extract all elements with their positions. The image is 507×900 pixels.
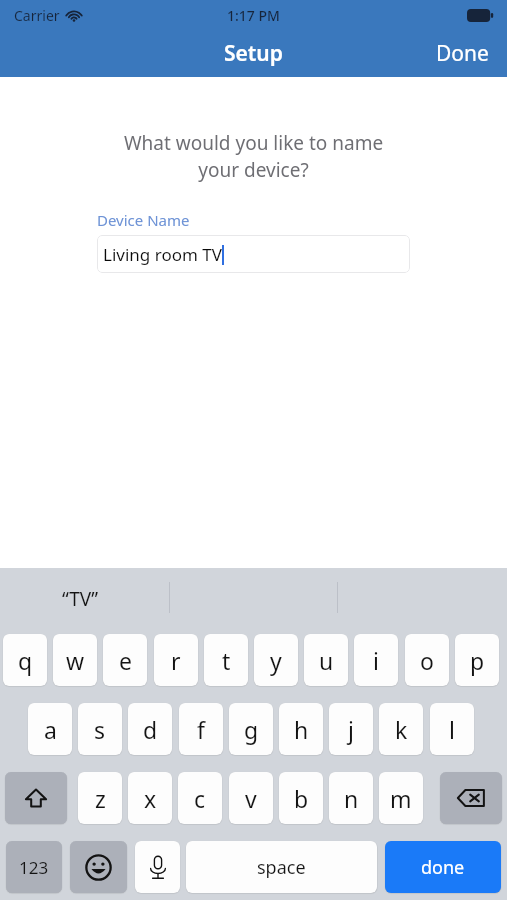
button[interactable]: Dictate xyxy=(135,841,180,893)
button[interactable]: space xyxy=(186,841,377,893)
staticText: f xyxy=(197,714,205,745)
staticText: t xyxy=(222,645,231,676)
staticText: Setup xyxy=(224,39,283,68)
button[interactable]: z xyxy=(78,772,122,824)
staticText: w xyxy=(66,645,85,676)
staticText: l xyxy=(449,714,455,745)
button[interactable]: u xyxy=(304,634,348,686)
staticText: g xyxy=(244,714,259,745)
staticText: n xyxy=(344,783,359,814)
button[interactable]: w xyxy=(53,634,97,686)
staticText: m xyxy=(390,783,412,814)
staticText: v xyxy=(245,783,257,814)
button[interactable]: j xyxy=(329,703,373,755)
staticText: b xyxy=(294,783,309,814)
button[interactable]: h xyxy=(279,703,323,755)
button[interactable]: r xyxy=(154,634,198,686)
button[interactable]: Emoji xyxy=(70,841,127,893)
button[interactable]: Done xyxy=(418,31,507,76)
button[interactable]: d xyxy=(128,703,172,755)
button[interactable]: done xyxy=(385,841,501,893)
staticText: s xyxy=(94,714,106,745)
staticText: done xyxy=(421,855,465,880)
button[interactable]: x xyxy=(128,772,172,824)
button[interactable]: g xyxy=(229,703,273,755)
staticText: 1:17 PM xyxy=(227,6,280,25)
button[interactable]: Living room TV xyxy=(97,235,410,273)
button[interactable]: “TV” xyxy=(62,586,98,612)
button[interactable]: v xyxy=(229,772,273,824)
staticText: e xyxy=(119,645,132,676)
staticText: Done xyxy=(436,39,489,68)
staticText: space xyxy=(257,855,306,880)
staticText: q xyxy=(18,645,33,676)
button[interactable]: c xyxy=(178,772,222,824)
staticText: y xyxy=(270,645,282,676)
staticText: What would you like to name your device? xyxy=(24,130,483,183)
button[interactable]: k xyxy=(379,703,423,755)
button[interactable]: t xyxy=(204,634,248,686)
staticText: i xyxy=(373,645,379,676)
button[interactable]: 123 xyxy=(6,841,62,893)
staticText: j xyxy=(348,714,354,745)
button[interactable]: y xyxy=(254,634,298,686)
staticText: d xyxy=(143,714,158,745)
button[interactable]: a xyxy=(28,703,72,755)
staticText: u xyxy=(319,645,334,676)
button[interactable]: n xyxy=(329,772,373,824)
button[interactable]: i xyxy=(354,634,398,686)
button[interactable]: m xyxy=(379,772,423,824)
staticText: Device Name xyxy=(97,210,190,230)
button[interactable]: e xyxy=(103,634,147,686)
staticText: r xyxy=(171,645,181,676)
staticText: k xyxy=(395,714,408,745)
staticText: x xyxy=(144,783,157,814)
button[interactable]: Shift xyxy=(5,772,67,824)
button[interactable]: l xyxy=(430,703,474,755)
staticText: z xyxy=(95,783,106,814)
button[interactable]: b xyxy=(279,772,323,824)
staticText: o xyxy=(420,645,434,676)
staticText: p xyxy=(470,645,485,676)
button[interactable]: q xyxy=(3,634,47,686)
staticText: c xyxy=(194,783,206,814)
button[interactable]: s xyxy=(78,703,122,755)
button[interactable]: Backspace xyxy=(440,772,502,824)
button[interactable]: f xyxy=(179,703,223,755)
staticText: 123 xyxy=(19,856,49,879)
button[interactable]: o xyxy=(405,634,449,686)
staticText: Carrier xyxy=(14,6,60,25)
staticText: h xyxy=(294,714,309,745)
staticText: Living room TV xyxy=(103,243,222,266)
staticText: a xyxy=(44,714,57,745)
button[interactable]: p xyxy=(455,634,499,686)
